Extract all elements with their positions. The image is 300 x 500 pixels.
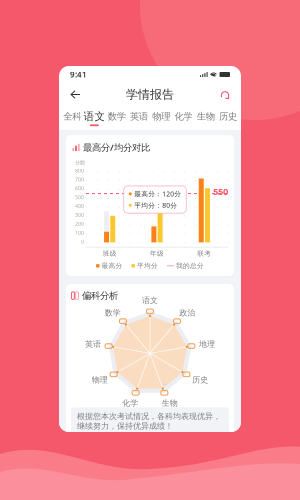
staticText: 化学	[174, 111, 192, 122]
staticText: 化学	[122, 398, 138, 408]
staticText: 根据您本次考试情况，各科均表现优异，继续努力，保持优异成绩！	[77, 411, 221, 431]
button[interactable]: 客服	[213, 85, 237, 103]
staticText: 800	[75, 167, 84, 174]
staticText: 历史	[219, 111, 237, 122]
staticText: 数学	[105, 308, 121, 318]
button[interactable]: 语文	[83, 108, 105, 128]
staticText: 英语	[85, 339, 101, 349]
staticText: 最高分：120分	[134, 189, 181, 198]
button[interactable]: 返回	[63, 85, 88, 104]
staticText: 年级	[150, 249, 164, 258]
button[interactable]: 数学	[105, 109, 128, 127]
staticText: 分数	[75, 159, 85, 166]
staticText: 最高分	[101, 262, 122, 270]
staticText: 全科	[63, 111, 81, 122]
staticText: 生物	[197, 111, 215, 122]
staticText: 平均分：80分	[134, 201, 177, 210]
button[interactable]: 历史	[217, 109, 239, 127]
button[interactable]: 全科	[61, 109, 83, 127]
staticText: 9:41	[70, 69, 87, 80]
staticText: 班级	[103, 249, 117, 258]
button[interactable]: 英语	[128, 109, 150, 127]
staticText: 历史	[192, 375, 208, 385]
staticText: 政治	[179, 308, 195, 318]
staticText: 联考	[197, 249, 211, 258]
staticText: 550	[213, 185, 228, 198]
staticText: 平均分	[137, 262, 158, 270]
staticText: 300	[75, 211, 84, 218]
staticText: 数学	[108, 111, 126, 122]
button[interactable]: 物理	[150, 109, 172, 127]
staticText: 物理	[152, 111, 170, 122]
staticText: 我的总分	[176, 262, 204, 270]
staticText: 500	[75, 194, 84, 201]
staticText: 学情报告	[126, 87, 174, 102]
button[interactable]: 生物	[194, 109, 217, 127]
staticText: 语文	[142, 295, 158, 305]
staticText: 语文	[83, 110, 105, 123]
staticText: 200	[75, 220, 84, 227]
staticText: 600	[75, 185, 84, 192]
staticText: 偏科分析	[82, 290, 118, 301]
staticText: 最高分/均分对比	[83, 141, 150, 153]
staticText: 0	[81, 238, 84, 245]
staticText: 生物	[162, 398, 178, 408]
staticText: 英语	[130, 111, 148, 122]
staticText: 100	[75, 229, 84, 236]
staticText: 地理	[199, 339, 215, 349]
staticText: 700	[75, 176, 84, 183]
button[interactable]: 化学	[172, 109, 194, 127]
staticText: 400	[75, 202, 84, 209]
staticText: 物理	[92, 375, 108, 385]
